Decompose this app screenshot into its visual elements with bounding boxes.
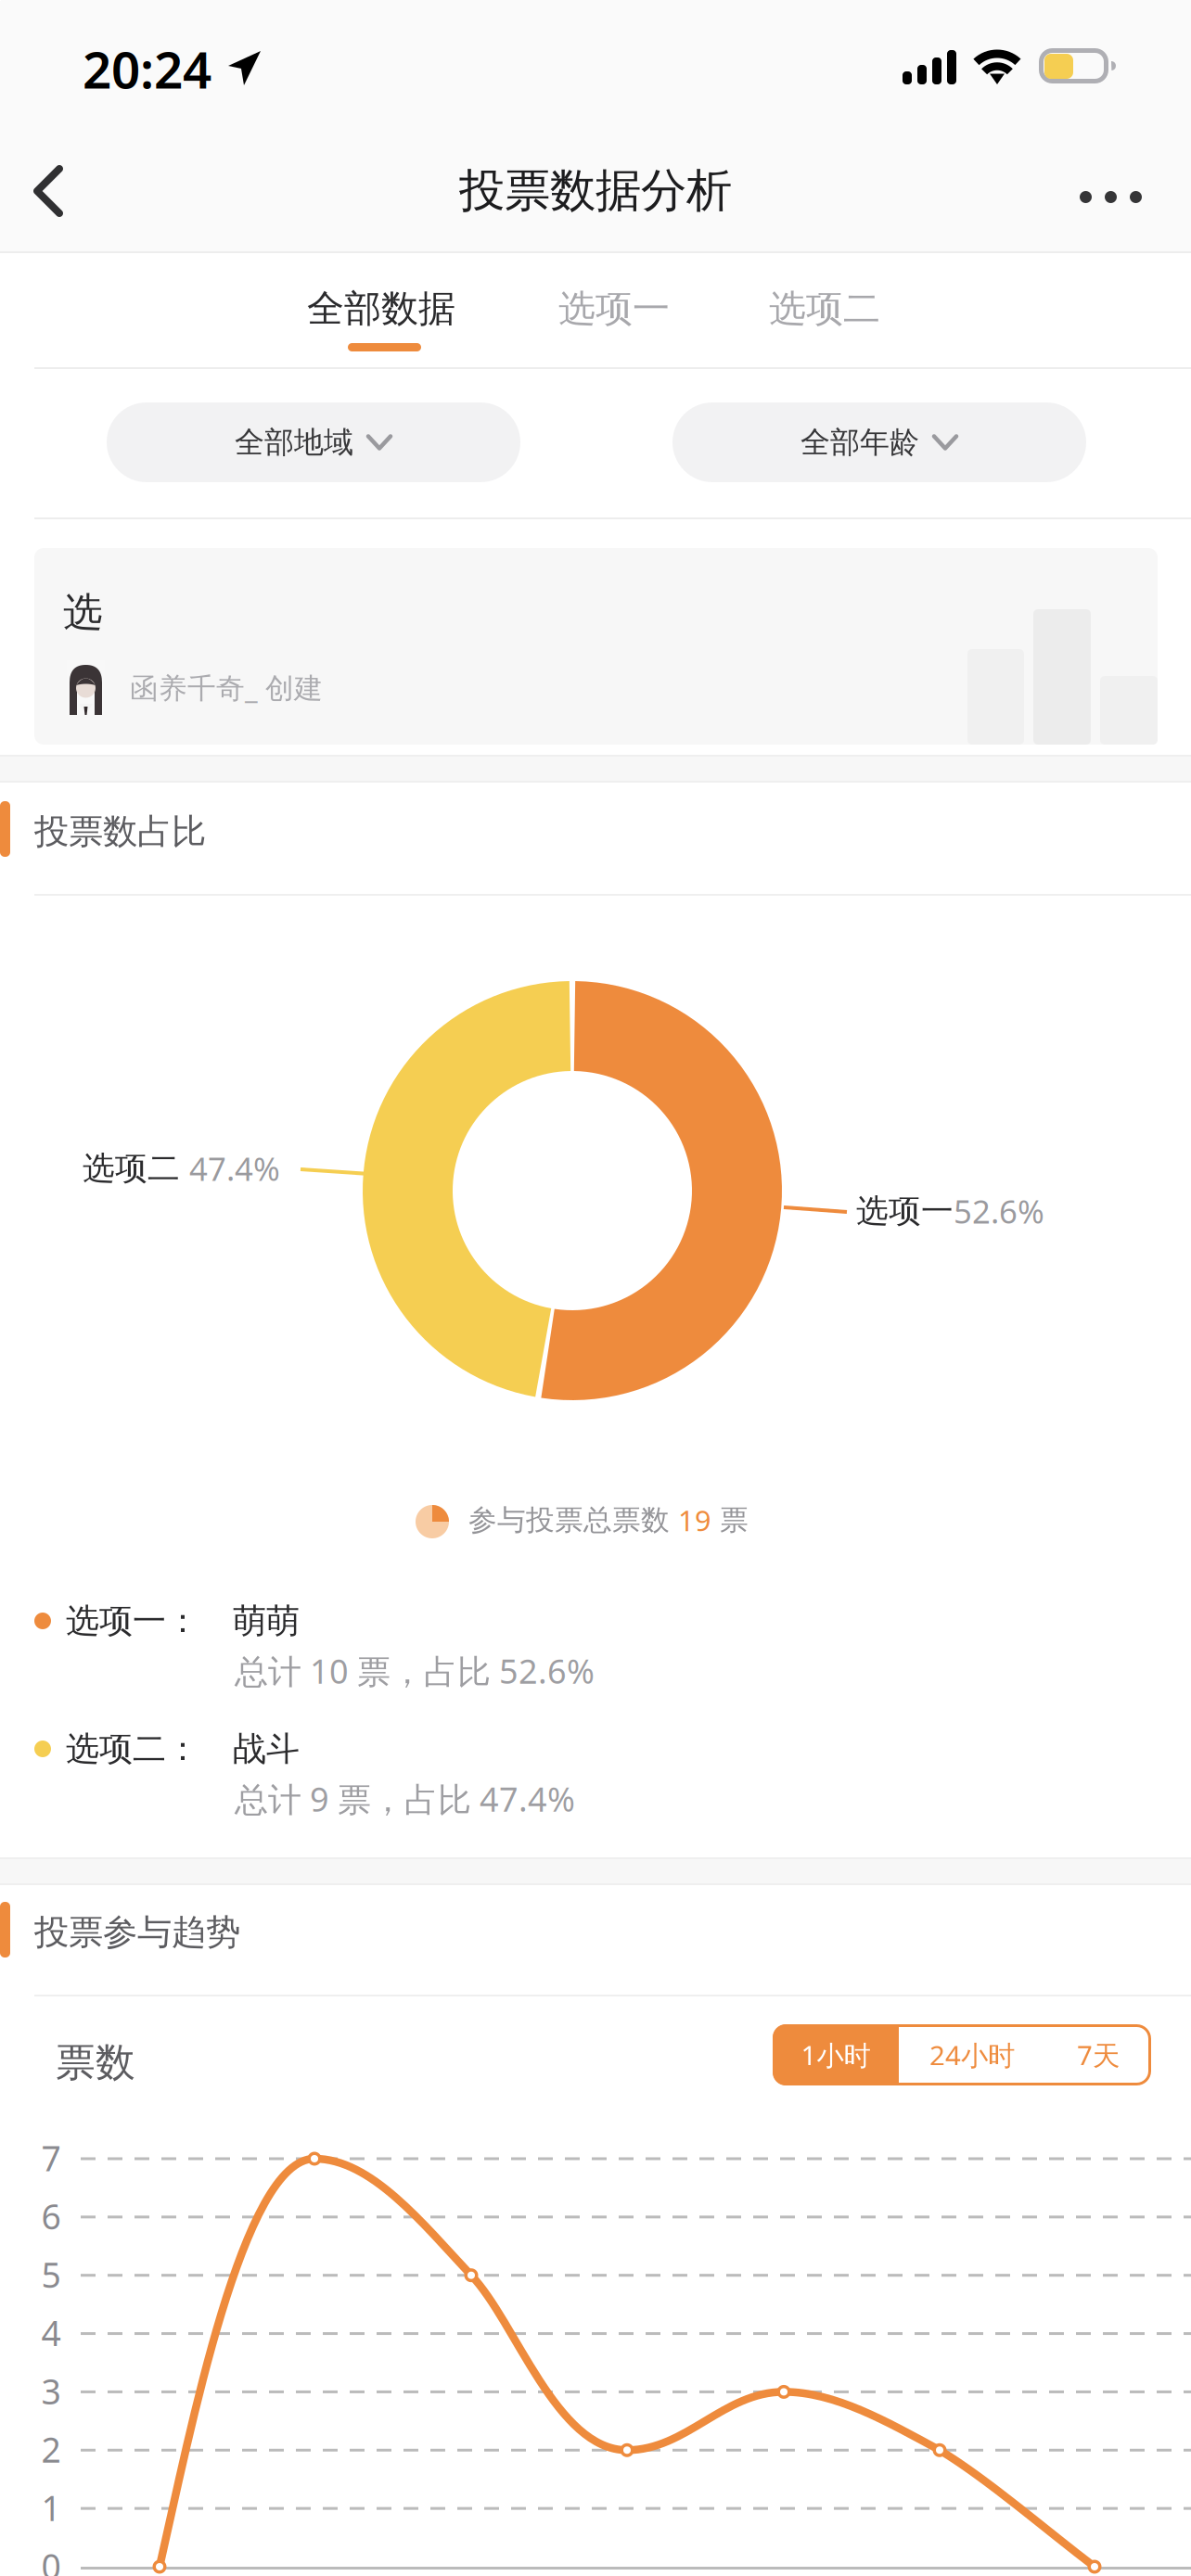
staticText: 票 [711,1503,749,1538]
staticText: 1 [41,2485,61,2531]
staticText: 47.4% [189,1147,280,1190]
staticText: 0 [41,2543,61,2576]
staticText: 19 [678,1501,711,1539]
staticText: 函养千奇_ 创建 [130,669,323,706]
staticText: 参与投票总票数 [468,1503,678,1538]
button[interactable]: 7天 [1045,2024,1151,2085]
staticText: 投票数据分析 [459,162,732,219]
button[interactable]: 24小时 [899,2024,1045,2085]
button[interactable]: 选项一 [521,253,707,367]
button[interactable]: 全部年龄 [672,402,1086,482]
staticText: 全部地域 [235,424,353,460]
staticText: 投票数占比 [34,810,206,853]
staticText: 3 [41,2368,61,2414]
button[interactable]: 全部数据 [270,253,493,367]
button[interactable]: 返回 [0,130,121,251]
staticText: 全部年龄 [800,424,919,460]
button[interactable]: 选项二 [732,253,917,367]
staticText: 52.6% [954,1190,1044,1232]
staticText: 战斗 [233,1728,300,1769]
staticText: 2 [41,2426,61,2472]
staticText: 1小时 [801,2037,871,2073]
staticText: 选项二 [83,1149,189,1188]
staticText: 选项一 [558,286,670,332]
staticText: 5 [41,2251,61,2297]
button[interactable]: 更多 [1051,130,1172,251]
staticText: 总计 9 票，占比 47.4% [235,1777,575,1821]
staticText: 4 [41,2310,61,2356]
staticText: 7天 [1077,2037,1120,2073]
staticText: 票数 [56,2038,135,2087]
staticText: 投票参与趋势 [34,1911,240,1954]
staticText: 选项二 [769,286,880,332]
button[interactable]: 1小时 [773,2024,899,2085]
staticText: 6 [41,2193,61,2239]
staticText: 全部数据 [307,286,455,332]
staticText: 20:24 [83,35,211,103]
button[interactable]: 全部地域 [107,402,520,482]
staticText: 7 [41,2135,61,2181]
staticText: 选 [63,588,103,636]
staticText: 萌萌 [233,1600,300,1641]
staticText: 总计 10 票，占比 52.6% [235,1649,595,1693]
staticText: 选项一 [856,1191,954,1231]
staticText: 选项一： [66,1600,199,1641]
staticText: 选项二： [66,1728,199,1769]
staticText: 24小时 [929,2037,1015,2073]
